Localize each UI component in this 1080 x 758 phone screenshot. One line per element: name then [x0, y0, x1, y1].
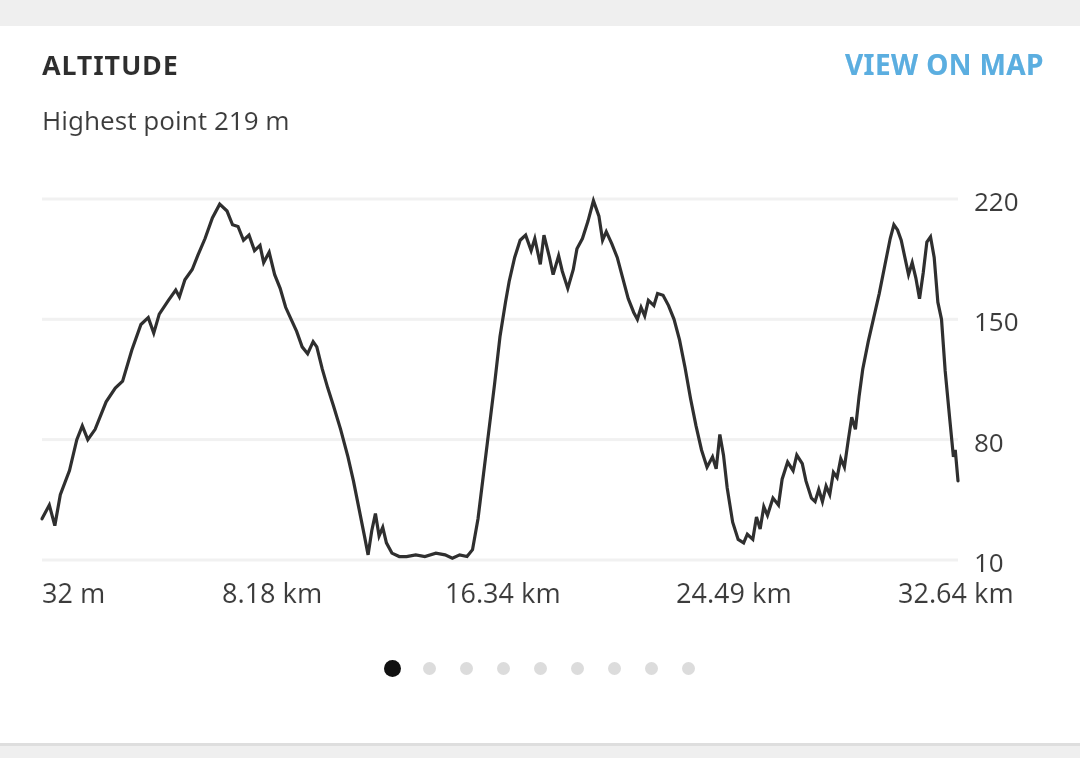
staticText: 10: [974, 544, 1004, 579]
staticText: 32 m: [42, 574, 106, 611]
button[interactable]: Page 2: [411, 653, 448, 683]
staticText: 150: [974, 303, 1019, 338]
button[interactable]: Page 1: [374, 653, 411, 683]
staticText: Highest point 219 m: [42, 102, 290, 137]
staticText: ALTITUDE: [42, 46, 179, 83]
button[interactable]: Page 3: [448, 653, 485, 683]
button[interactable]: Page 4: [485, 653, 522, 683]
staticText: 8.18 km: [222, 574, 323, 611]
staticText: 220: [974, 183, 1019, 218]
button[interactable]: Page 8: [633, 653, 670, 683]
staticText: 16.34 km: [445, 574, 561, 611]
button[interactable]: Page 9: [670, 653, 707, 683]
staticText: 32.64 km: [898, 574, 1014, 611]
button[interactable]: Page 6: [559, 653, 596, 683]
button[interactable]: Page 7: [596, 653, 633, 683]
staticText: 24.49 km: [676, 574, 792, 611]
button[interactable]: Page 5: [522, 653, 559, 683]
staticText: VIEW ON MAP: [845, 45, 1044, 83]
button[interactable]: VIEW ON MAP: [827, 35, 1080, 93]
staticText: 80: [974, 424, 1004, 459]
